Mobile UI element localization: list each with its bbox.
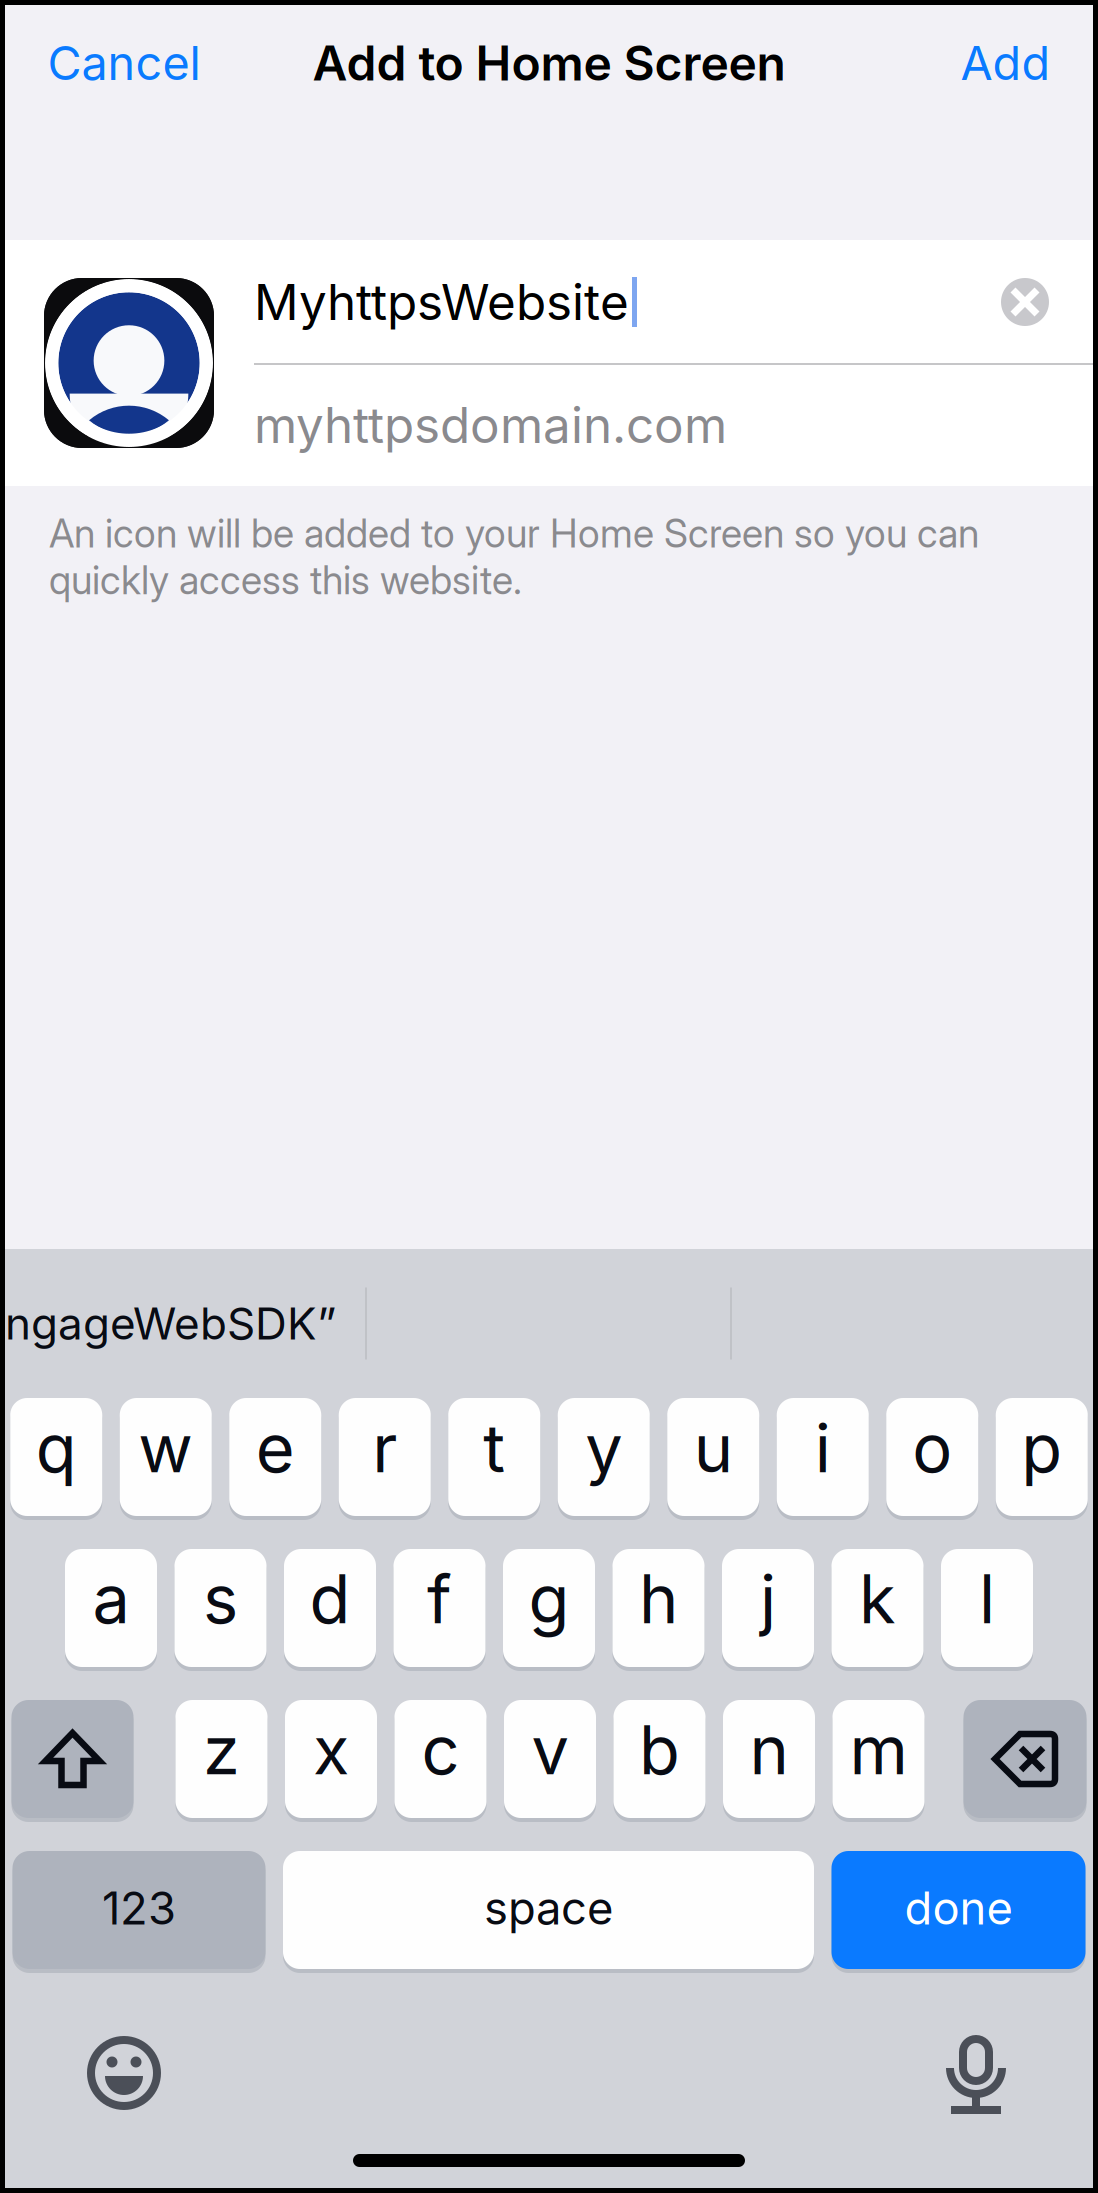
staticText: ngageWebSDK” <box>5 1297 336 1350</box>
button[interactable]: j <box>722 1549 814 1671</box>
staticText: Add <box>960 35 1050 91</box>
button[interactable]: u <box>667 1398 759 1520</box>
staticText: myhttpsdomain.com <box>254 395 727 455</box>
button[interactable]: k <box>831 1549 923 1671</box>
staticText: MyhttpsWebsite <box>254 272 629 332</box>
staticText: p <box>1021 1408 1062 1488</box>
button[interactable]: p <box>996 1398 1088 1520</box>
button[interactable]: t <box>448 1398 540 1520</box>
button[interactable]: n <box>723 1700 815 1822</box>
staticText: i <box>815 1408 831 1488</box>
staticText: h <box>639 1559 678 1639</box>
staticText: w <box>138 1408 193 1488</box>
staticText: Cancel <box>47 35 200 91</box>
button[interactable]: Shift <box>11 1700 133 1822</box>
staticText: space <box>484 1881 613 1935</box>
button[interactable]: 123 <box>12 1851 265 1973</box>
button[interactable]: space <box>283 1851 814 1973</box>
button[interactable]: z <box>175 1700 267 1822</box>
button[interactable]: l <box>941 1549 1033 1671</box>
button[interactable]: r <box>339 1398 431 1520</box>
button[interactable]: Emoji keyboard <box>81 2030 167 2116</box>
staticText: d <box>309 1559 350 1639</box>
button[interactable]: s <box>174 1549 266 1671</box>
staticText: m <box>849 1710 907 1790</box>
staticText: r <box>372 1408 397 1488</box>
staticText: s <box>203 1559 238 1639</box>
button[interactable]: o <box>886 1398 978 1520</box>
button[interactable]: h <box>612 1549 704 1671</box>
button[interactable]: Dictation <box>933 2030 1019 2116</box>
staticText: f <box>427 1559 452 1639</box>
button[interactable]: m <box>832 1700 924 1822</box>
button[interactable]: y <box>558 1398 650 1520</box>
button[interactable]: g <box>503 1549 595 1671</box>
staticText: Add to Home Screen <box>312 34 785 92</box>
staticText: 123 <box>102 1881 176 1935</box>
button[interactable]: x <box>285 1700 377 1822</box>
staticText: t <box>483 1408 505 1488</box>
staticText: x <box>313 1710 349 1790</box>
staticText: b <box>639 1710 680 1790</box>
button[interactable]: v <box>504 1700 596 1822</box>
button[interactable]: b <box>613 1700 705 1822</box>
staticText: a <box>92 1559 129 1639</box>
staticText: g <box>528 1559 569 1639</box>
button[interactable]: e <box>229 1398 321 1520</box>
button[interactable]: i <box>777 1398 869 1520</box>
staticText: v <box>531 1710 568 1790</box>
staticText: k <box>859 1559 896 1639</box>
staticText: n <box>749 1710 788 1790</box>
button[interactable]: Clear text <box>1001 278 1049 326</box>
button[interactable]: w <box>120 1398 212 1520</box>
staticText: o <box>912 1408 952 1488</box>
staticText: e <box>256 1408 295 1488</box>
button[interactable]: Cancel <box>47 17 200 109</box>
staticText: z <box>203 1710 240 1790</box>
staticText: y <box>585 1408 622 1488</box>
staticText: q <box>36 1408 77 1488</box>
button[interactable]: done <box>831 1851 1085 1973</box>
staticText: An icon will be added to your Home Scree… <box>49 510 979 604</box>
button[interactable]: Add <box>960 17 1050 109</box>
staticText: j <box>760 1559 776 1639</box>
button[interactable]: f <box>393 1549 485 1671</box>
button[interactable]: q <box>10 1398 102 1520</box>
staticText: u <box>694 1408 733 1488</box>
staticText: done <box>904 1881 1012 1935</box>
staticText: c <box>421 1710 459 1790</box>
staticText: l <box>979 1559 995 1639</box>
button[interactable]: a <box>65 1549 157 1671</box>
button[interactable]: d <box>284 1549 376 1671</box>
button[interactable]: Delete <box>963 1700 1086 1822</box>
button[interactable]: c <box>394 1700 486 1822</box>
